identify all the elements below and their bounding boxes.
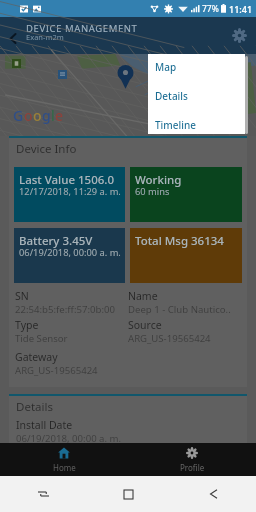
staticText: ARG_US-19565424 xyxy=(15,364,98,377)
staticText: o xyxy=(33,106,42,125)
staticText: Profile xyxy=(180,462,205,473)
staticText: Device Info xyxy=(16,141,77,157)
staticText: G xyxy=(13,106,24,125)
staticText: Name xyxy=(128,289,158,303)
staticText: Last Value 1506.0 xyxy=(19,172,115,188)
staticText: ARG_US-19565424 xyxy=(128,332,211,345)
staticText: 12/17/2018, 11:29 a. m. xyxy=(19,185,121,198)
staticText: DEVICE MANAGEMENT xyxy=(26,22,138,35)
button[interactable]: Home xyxy=(86,476,171,512)
staticText: Type xyxy=(15,318,39,332)
staticText: 60 mins xyxy=(135,185,170,198)
button[interactable]: Last Value 1506.0 xyxy=(14,167,125,222)
staticText: Details xyxy=(16,399,53,415)
staticText: 06/19/2018, 00:00 a. m. xyxy=(16,432,122,443)
staticText: Total Msg 36134 xyxy=(135,233,224,249)
staticText: 22:54:b5:fe:ff:57:0b:00 xyxy=(15,303,115,316)
staticText: 11:41 xyxy=(229,3,253,15)
staticText: Install Date xyxy=(16,418,73,432)
staticText: 06/19/2018, 00:00 a. m. xyxy=(19,246,121,259)
staticText: Exan-m2m xyxy=(26,32,64,42)
button[interactable]: Battery 3.45V xyxy=(14,228,125,283)
staticText: e xyxy=(55,106,64,125)
staticText: o xyxy=(24,106,33,125)
button[interactable]: Back xyxy=(171,476,256,512)
button[interactable]: Map xyxy=(148,52,245,81)
button[interactable]: Details xyxy=(148,81,245,110)
staticText: Working xyxy=(135,172,182,188)
staticText: 77% xyxy=(202,3,219,15)
staticText: l xyxy=(51,106,55,125)
button[interactable]: Home xyxy=(0,443,128,476)
button[interactable]: Total Msg 36134 xyxy=(130,228,242,283)
staticText: Battery 3.45V xyxy=(19,233,93,249)
staticText: Home xyxy=(53,462,76,473)
staticText: Map xyxy=(155,60,177,74)
staticText: Tide Sensor xyxy=(15,332,68,345)
button[interactable]: Settings xyxy=(222,17,256,54)
button[interactable]: Recent apps xyxy=(0,476,86,512)
button[interactable]: Working xyxy=(130,167,242,222)
staticText: SN xyxy=(15,289,29,303)
button[interactable]: Back xyxy=(0,17,26,54)
staticText: g xyxy=(42,106,51,125)
button[interactable]: Profile xyxy=(128,443,256,476)
staticText: Deep 1 - Club Nautico.. xyxy=(128,303,231,316)
staticText: Gateway xyxy=(15,350,58,364)
staticText: Details xyxy=(155,89,188,103)
staticText: Timeline xyxy=(155,118,196,132)
button[interactable]: Timeline xyxy=(148,110,245,139)
staticText: Source xyxy=(128,318,162,332)
